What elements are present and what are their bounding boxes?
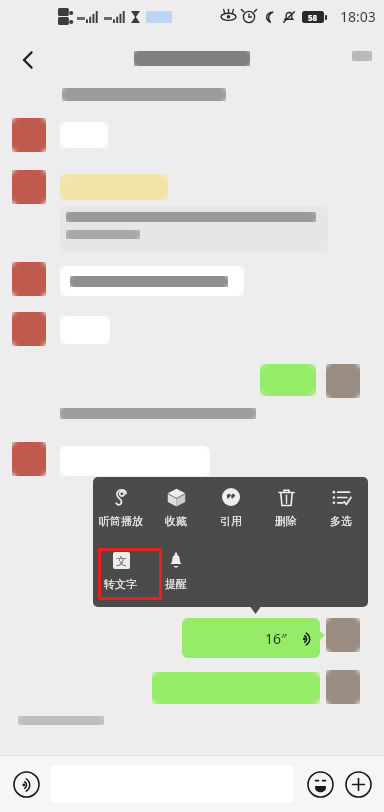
button[interactable]: More [352, 51, 372, 61]
button[interactable]: 提醒 [148, 537, 203, 603]
staticText: 16″ [265, 629, 287, 648]
staticText: 收藏 [165, 514, 187, 528]
button[interactable]: More options [342, 768, 374, 800]
button[interactable]: Emoji [304, 768, 336, 800]
button[interactable]: 删除 [258, 477, 313, 537]
button[interactable]: 引用 [203, 477, 258, 537]
staticText: 多选 [330, 514, 352, 528]
button[interactable]: Voice input [10, 768, 42, 800]
staticText: 18:03 [340, 7, 376, 26]
button[interactable]: 文 [93, 537, 148, 603]
button[interactable]: 多选 [313, 477, 368, 537]
staticText: 文 [116, 554, 127, 568]
button[interactable]: 收藏 [148, 477, 203, 537]
staticText: 58 [308, 12, 318, 23]
staticText: 听筒播放 [99, 514, 143, 528]
button[interactable]: 听筒播放 [93, 477, 148, 537]
staticText: 引用 [220, 514, 242, 528]
button[interactable]: Back [6, 38, 50, 82]
staticText: 转文字 [104, 577, 137, 591]
button[interactable]: 16″ [182, 618, 320, 658]
staticText: 删除 [275, 514, 297, 528]
staticText: 提醒 [165, 577, 187, 591]
